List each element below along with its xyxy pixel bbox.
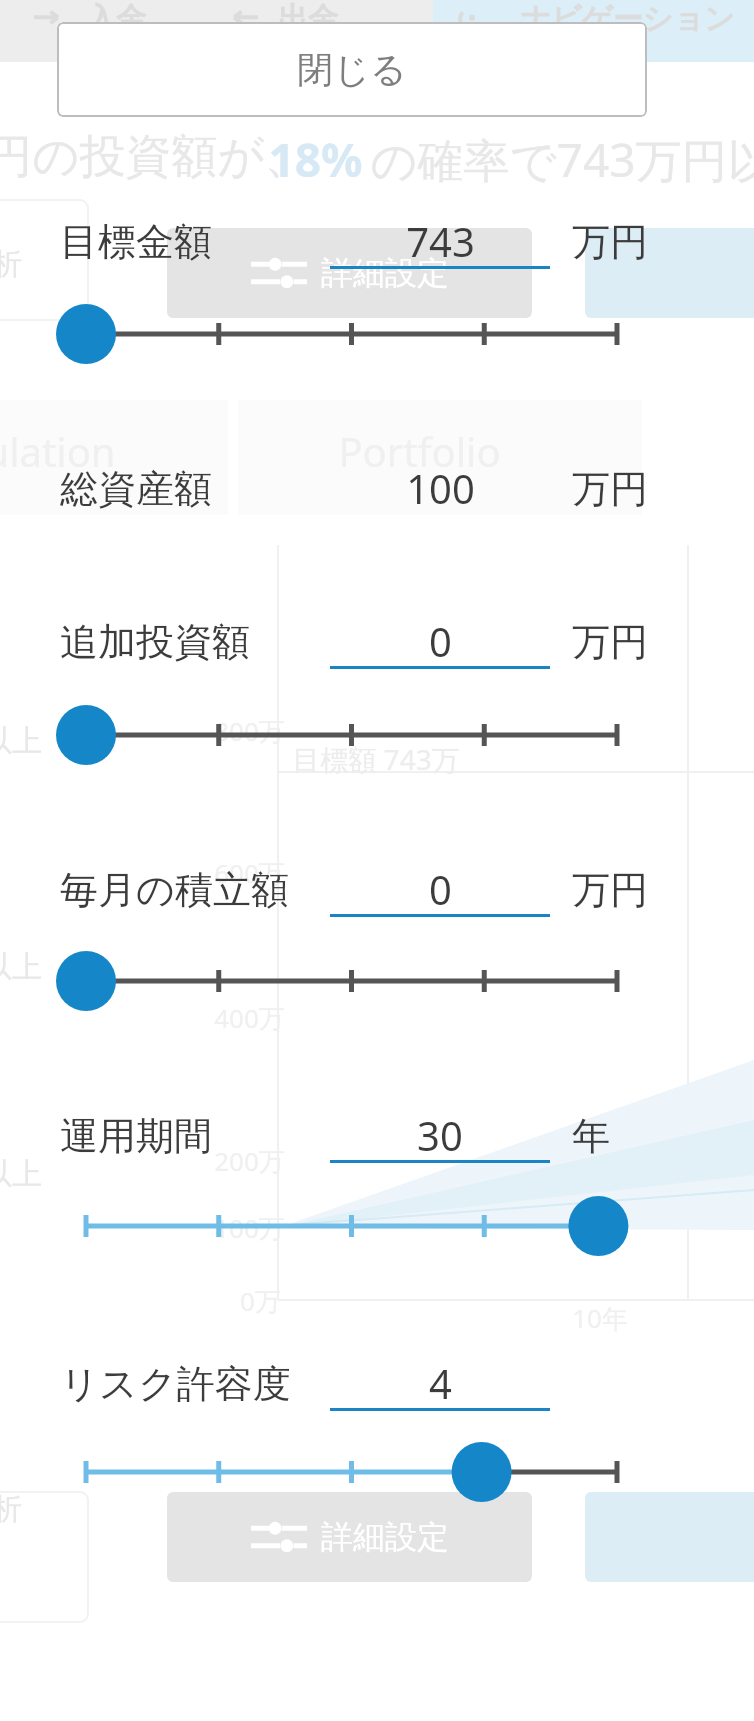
staticText: 100 [406, 461, 475, 515]
button[interactable]: 743 [330, 214, 550, 278]
staticText: 743 [406, 214, 475, 268]
staticText: 10年 [572, 1300, 628, 1336]
staticText: 0 [429, 862, 452, 916]
staticText: 析 [0, 245, 22, 283]
staticText: 0 [429, 614, 452, 668]
staticText: 入金 [86, 0, 146, 38]
staticText: 詳細設定 [321, 1517, 449, 1557]
staticText: ulation [0, 424, 116, 478]
staticText: 800万 [214, 713, 285, 749]
staticText: 目標金額 [60, 218, 212, 266]
staticText: 運用期間 [60, 1112, 212, 1160]
staticText: 以上 [0, 1155, 42, 1193]
staticText: リスク許容度 [60, 1360, 291, 1408]
staticText: 万円 [572, 618, 648, 666]
button[interactable]: 30 [330, 1108, 550, 1172]
button[interactable]: Slider [0, 1424, 754, 1520]
button[interactable]: Slider [0, 687, 754, 783]
staticText: 詳細設定 [321, 253, 449, 293]
staticText: 600万 [214, 855, 285, 891]
staticText: 年 [572, 1112, 610, 1160]
staticText: 以上 [0, 948, 42, 986]
staticText: 目標額 743万 [292, 740, 460, 778]
staticText: 万円 [572, 465, 648, 513]
staticText: 閉じる [297, 47, 407, 92]
staticText: 出金 [278, 0, 338, 38]
button[interactable]: Slider [0, 933, 754, 1029]
button[interactable]: 閉じる [57, 22, 647, 117]
staticText: 400万 [214, 1000, 285, 1036]
staticText: 18% [268, 128, 363, 191]
button[interactable]: Slider [0, 1178, 754, 1274]
staticText: 析 [0, 1490, 22, 1528]
staticText: Portfolio [338, 424, 501, 478]
staticText: 0万 [240, 1283, 281, 1319]
button[interactable]: Slider [0, 286, 754, 382]
button[interactable]: 0 [330, 614, 550, 678]
staticText: 200万 [214, 1143, 285, 1179]
staticText: 以上 [0, 722, 42, 760]
button[interactable]: 4 [330, 1356, 550, 1420]
staticText: 円の投資額が、 [0, 128, 311, 186]
staticText: 4 [429, 1356, 452, 1410]
staticText: 万円 [572, 218, 648, 266]
staticText: 30 [417, 1108, 463, 1162]
staticText: ナビゲーション [520, 0, 735, 38]
staticText: の確率で743万円以 [370, 128, 754, 191]
staticText: 万円 [572, 866, 648, 914]
button[interactable]: 0 [330, 862, 550, 926]
staticText: 総資産額 [60, 465, 212, 513]
staticText: 追加投資額 [60, 618, 250, 666]
button[interactable]: 100 [330, 461, 550, 525]
staticText: 100万 [214, 1210, 285, 1246]
staticText: 毎月の積立額 [60, 866, 289, 914]
